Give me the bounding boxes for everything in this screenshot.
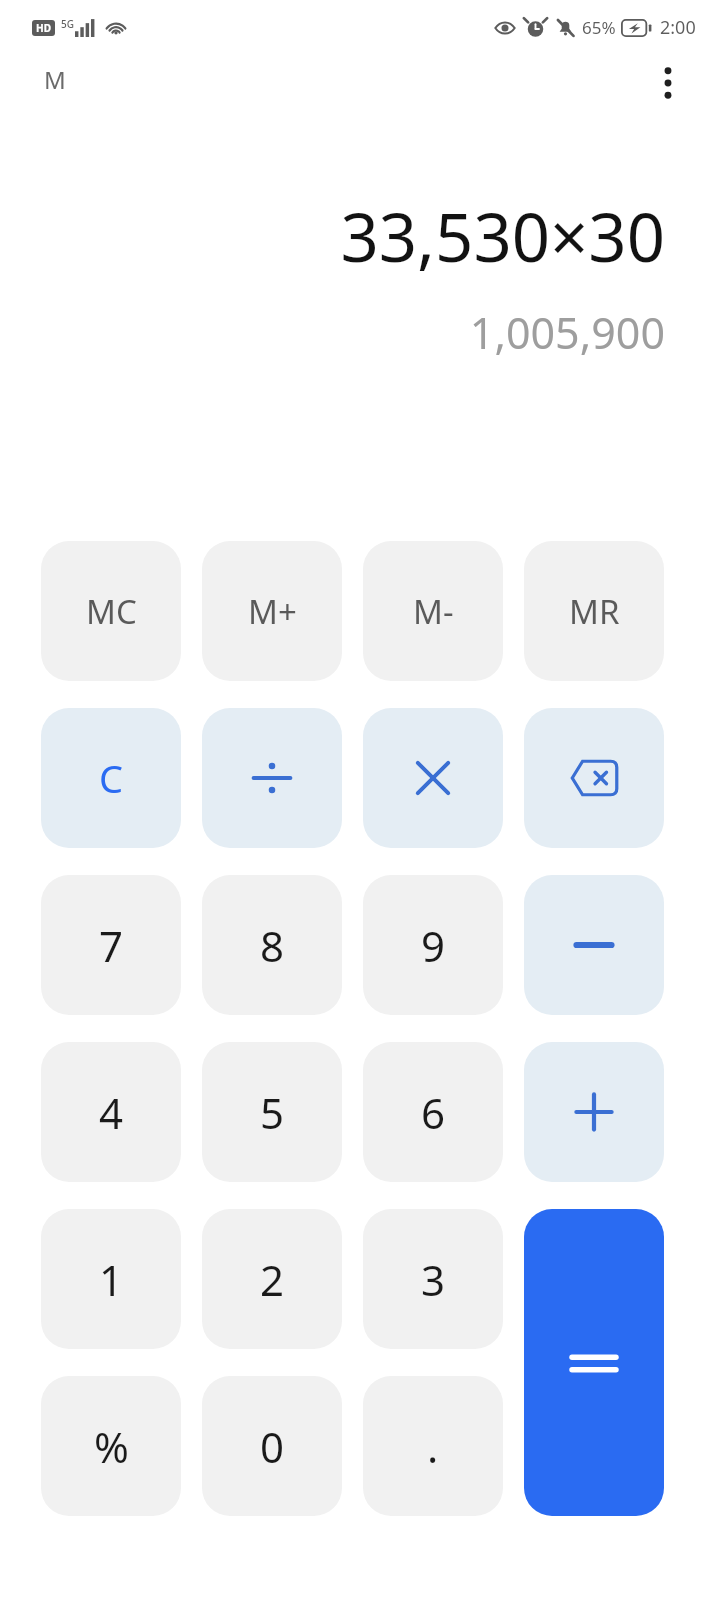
staticText: 5	[260, 1084, 285, 1141]
button[interactable]: More options	[642, 57, 694, 109]
staticText: 6	[421, 1084, 446, 1141]
button[interactable]: 0	[202, 1376, 342, 1516]
button[interactable]: Backspace	[524, 708, 664, 848]
button[interactable]: Plus	[524, 1042, 664, 1182]
staticText: .	[427, 1418, 439, 1475]
button[interactable]: 4	[41, 1042, 181, 1182]
staticText: 9	[421, 917, 446, 974]
staticText: 7	[99, 917, 124, 974]
button[interactable]: 9	[363, 875, 503, 1015]
staticText: 8	[260, 917, 285, 974]
staticText: 4	[99, 1084, 124, 1141]
button[interactable]: C	[41, 708, 181, 848]
button[interactable]: Minus	[524, 875, 664, 1015]
staticText: 33,530×30	[340, 190, 665, 281]
staticText: 5G	[61, 17, 74, 31]
button[interactable]: 5	[202, 1042, 342, 1182]
button[interactable]: 7	[41, 875, 181, 1015]
staticText: MR	[569, 589, 620, 634]
staticText: M-	[413, 589, 454, 634]
button[interactable]: M+	[202, 541, 342, 681]
button[interactable]: MR	[524, 541, 664, 681]
button[interactable]: 2	[202, 1209, 342, 1349]
staticText: M+	[248, 589, 297, 634]
staticText: 3	[421, 1251, 446, 1308]
button[interactable]: M-	[363, 541, 503, 681]
staticText: HD	[36, 21, 51, 35]
button[interactable]: Equals	[524, 1209, 664, 1516]
staticText: 0	[260, 1418, 285, 1475]
staticText: 65%	[582, 16, 616, 39]
button[interactable]: Multiply	[363, 708, 503, 848]
staticText: 2:00	[660, 15, 696, 40]
button[interactable]: .	[363, 1376, 503, 1516]
staticText: 1,005,900	[469, 303, 665, 362]
staticText: 2	[260, 1251, 285, 1308]
button[interactable]: MC	[41, 541, 181, 681]
button[interactable]: 6	[363, 1042, 503, 1182]
staticText: %	[94, 1418, 129, 1475]
staticText: C	[99, 752, 124, 804]
button[interactable]: 3	[363, 1209, 503, 1349]
staticText: MC	[86, 589, 137, 634]
button[interactable]: %	[41, 1376, 181, 1516]
button[interactable]: Divide	[202, 708, 342, 848]
button[interactable]: 8	[202, 875, 342, 1015]
staticText: M	[44, 63, 66, 96]
staticText: 1	[99, 1251, 124, 1308]
button[interactable]: 1	[41, 1209, 181, 1349]
